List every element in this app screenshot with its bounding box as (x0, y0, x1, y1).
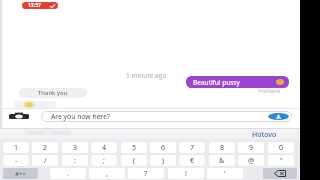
staticText: 4 (102, 143, 107, 153)
staticText: : (74, 156, 76, 166)
staticText: Prečítané (258, 88, 281, 95)
staticText: . (67, 169, 69, 179)
button[interactable]: @ (238, 155, 264, 166)
staticText: & (219, 156, 225, 166)
button[interactable]: ( (121, 155, 147, 166)
staticText: 1 (14, 143, 19, 153)
staticText: " (280, 156, 283, 166)
button[interactable]: 0 (268, 142, 294, 153)
button[interactable]: & (209, 155, 235, 166)
staticText: ! (185, 169, 187, 179)
staticText: @ (248, 156, 255, 166)
staticText: 13:57 (28, 2, 41, 9)
staticText: ' (224, 169, 226, 179)
staticText: Beautiful pussy (193, 78, 240, 87)
staticText: Thank you (38, 89, 68, 97)
staticText: / (44, 156, 47, 166)
button[interactable]: Recording 13:57 (22, 2, 58, 9)
staticText: 0 (279, 143, 284, 153)
staticText: Are you now here? (51, 112, 110, 121)
button[interactable]: / (32, 155, 58, 166)
button[interactable]: Thank you (19, 88, 87, 98)
button[interactable]: 8 (209, 142, 235, 153)
button[interactable]: 9 (238, 142, 264, 153)
staticText: , (106, 169, 108, 179)
button[interactable]: 1 (3, 142, 29, 153)
button[interactable]: € (179, 155, 205, 166)
staticText: ( (133, 156, 136, 166)
staticText: € (190, 156, 195, 166)
button[interactable]: ' (207, 168, 243, 179)
staticText: 6 (161, 143, 166, 153)
button[interactable]: 2 (32, 142, 58, 153)
button[interactable]: Are you now here? (41, 111, 292, 122)
staticText: - (15, 156, 18, 166)
staticText: 8 (220, 143, 225, 153)
staticText: 2 (43, 143, 48, 153)
button[interactable]: - (3, 155, 29, 166)
staticText: 3 (73, 143, 78, 153)
button[interactable]: Send (268, 113, 289, 120)
button[interactable]: , (89, 168, 125, 179)
button[interactable]: ; (91, 155, 117, 166)
button[interactable] (14, 101, 57, 108)
staticText: 9 (249, 143, 254, 153)
button[interactable]: 7 (179, 142, 205, 153)
staticText: 5 (132, 143, 137, 153)
staticText: 7 (190, 143, 195, 153)
staticText: ? (144, 169, 148, 179)
button[interactable]: #+= (3, 168, 38, 179)
button[interactable]: ) (150, 155, 176, 166)
button[interactable]: 4 (91, 142, 117, 153)
button[interactable]: Beautiful pussy (186, 76, 289, 88)
button[interactable]: Hotovo (252, 130, 277, 140)
button[interactable]: " (268, 155, 294, 166)
staticText: ) (162, 156, 165, 166)
button[interactable]: . (50, 168, 86, 179)
staticText: #+= (15, 170, 26, 178)
button[interactable]: : (62, 155, 88, 166)
staticText: 1 minute ago (126, 71, 167, 80)
button[interactable]: 6 (150, 142, 176, 153)
button[interactable]: 3 (62, 142, 88, 153)
button[interactable]: ! (168, 168, 204, 179)
button[interactable]: Backspace (263, 168, 297, 179)
button[interactable]: Camera (9, 112, 29, 120)
button[interactable]: ? (128, 168, 164, 179)
button[interactable]: 5 (121, 142, 147, 153)
staticText: ; (103, 156, 105, 166)
